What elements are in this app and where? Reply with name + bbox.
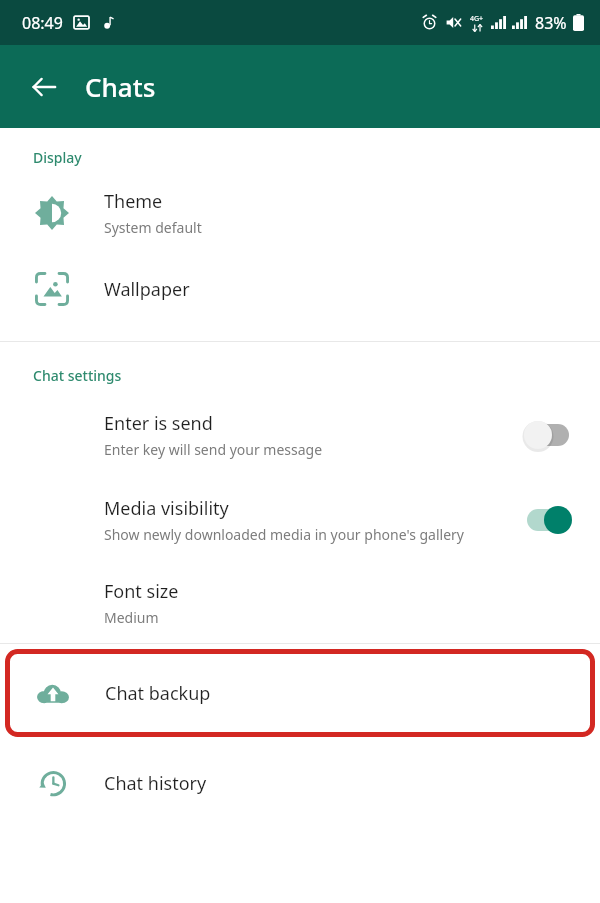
button[interactable]: Chat history [0, 742, 600, 824]
staticText: Chat settings [33, 366, 122, 385]
staticText: Show newly downloaded media in your phon… [104, 525, 464, 544]
staticText: System default [104, 218, 202, 237]
staticText: Wallpaper [104, 277, 190, 302]
button[interactable]: Enter is send [522, 418, 576, 452]
staticText: Chats [85, 69, 156, 104]
button[interactable]: Back [20, 63, 68, 111]
button[interactable]: Media visibility [0, 477, 600, 563]
staticText: 4G+ [470, 14, 484, 24]
button[interactable]: Font size [0, 563, 600, 643]
staticText: 08:49 [22, 12, 63, 34]
button[interactable]: Chat backup [5, 649, 595, 737]
staticText: Media visibility [104, 496, 229, 521]
staticText: 83% [535, 12, 567, 34]
staticText: Enter key will send your message [104, 440, 323, 459]
staticText: Theme [104, 189, 163, 214]
staticText: Chat history [104, 771, 207, 796]
staticText: Medium [104, 608, 159, 627]
button[interactable]: Media visibility [522, 503, 576, 537]
staticText: Chat backup [105, 681, 211, 706]
button[interactable]: Theme [0, 175, 600, 251]
staticText: Font size [104, 579, 179, 604]
staticText: Display [33, 148, 82, 167]
staticText: Enter is send [104, 411, 213, 436]
button[interactable]: Enter is send [0, 393, 600, 477]
button[interactable]: Wallpaper [0, 251, 600, 327]
